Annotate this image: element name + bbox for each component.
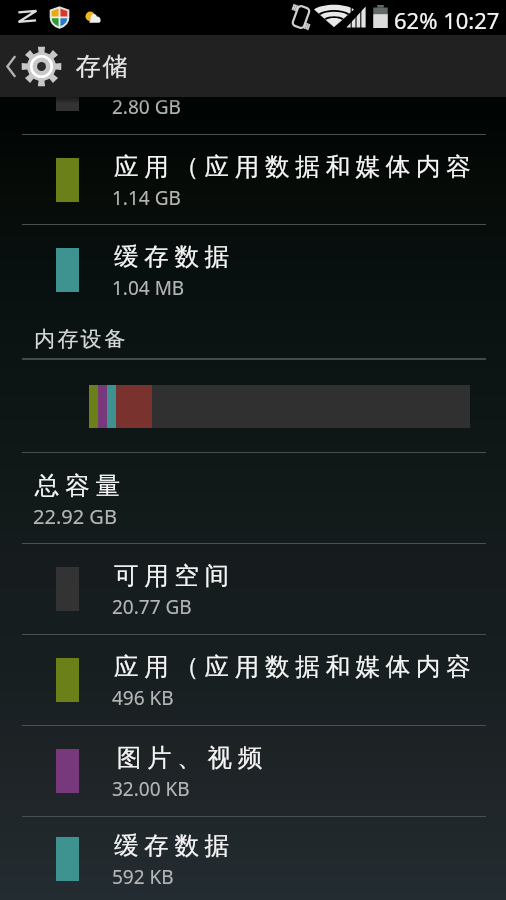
staticText: 内存设备 xyxy=(34,326,128,352)
staticText: 592 KB xyxy=(112,864,174,890)
button[interactable]: 缓存数据 xyxy=(0,225,506,314)
staticText: 缓存数据 xyxy=(114,241,235,272)
staticText: 应用（应用数据和媒体内容 xyxy=(114,60,477,91)
staticText: 缓存数据 xyxy=(114,830,235,861)
staticText: 图片、视频 xyxy=(114,742,265,773)
button[interactable]: 应用（应用数据和媒体内容 xyxy=(0,135,506,224)
button[interactable]: 应用（应用数据和媒体内容 xyxy=(0,44,506,134)
staticText: 20.77 GB xyxy=(112,594,192,620)
staticText: 62% 10:27 xyxy=(394,5,500,35)
staticText: 1.04 MB xyxy=(112,275,185,301)
staticText: 应用（应用数据和媒体内容 xyxy=(114,651,477,682)
button[interactable]: 缓存数据 xyxy=(0,817,506,900)
button[interactable]: 图片、视频 xyxy=(0,726,506,816)
staticText: 应用（应用数据和媒体内容 xyxy=(114,151,477,182)
staticText: 2.80 GB xyxy=(112,94,181,120)
staticText: 22.92 GB xyxy=(33,503,117,530)
staticText: 496 KB xyxy=(112,685,174,711)
staticText: 存储 xyxy=(76,51,130,82)
button[interactable]: Navigate up xyxy=(0,35,130,97)
staticText: 32.00 KB xyxy=(112,776,190,802)
button[interactable]: 可用空间 xyxy=(0,544,506,634)
staticText: 总容量 xyxy=(35,470,126,501)
staticText: 1.14 GB xyxy=(112,185,181,211)
button[interactable]: 应用（应用数据和媒体内容 xyxy=(0,635,506,725)
staticText: 可用空间 xyxy=(114,560,235,591)
